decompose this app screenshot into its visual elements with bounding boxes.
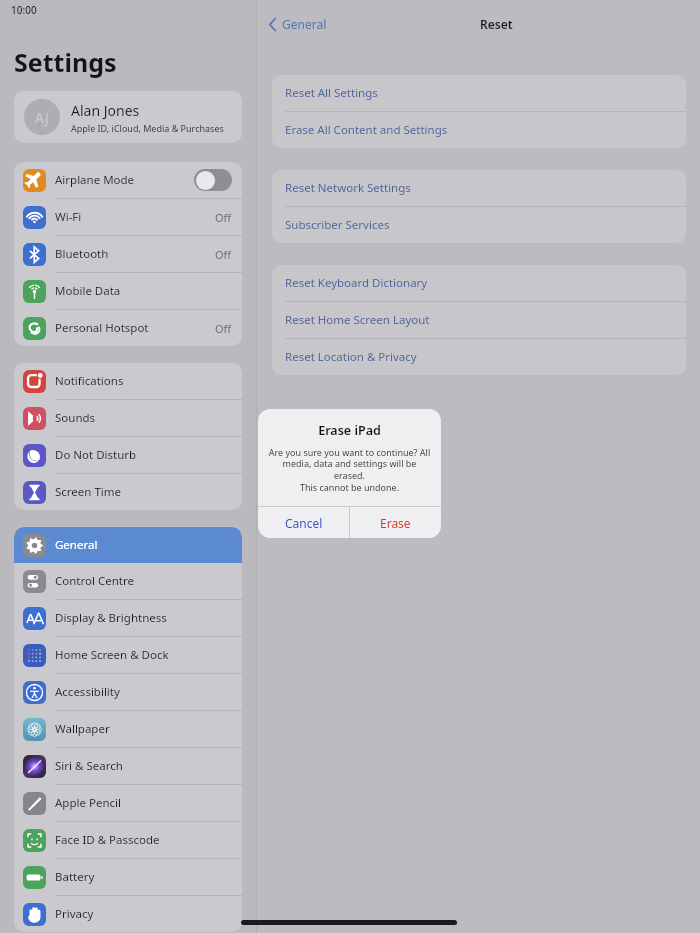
staticText: Subscriber Services: [285, 217, 390, 233]
staticText: AJ: [35, 108, 49, 127]
staticText: Bluetooth: [55, 246, 109, 262]
staticText: Display & Brightness: [55, 610, 167, 626]
staticText: Alan Jones: [71, 101, 140, 120]
button[interactable]: Siri & Search: [14, 748, 242, 784]
button[interactable]: Wallpaper: [14, 711, 242, 747]
button[interactable]: Sounds: [14, 400, 242, 436]
button[interactable]: Do Not Disturb: [14, 437, 242, 473]
staticText: Cancel: [285, 515, 323, 531]
staticText: Reset Location & Privacy: [285, 349, 417, 365]
staticText: Accessibility: [55, 684, 120, 700]
staticText: Home Screen & Dock: [55, 647, 169, 663]
button[interactable]: Erase All Content and Settings: [272, 112, 686, 148]
staticText: Privacy: [55, 906, 94, 922]
button[interactable]: Home Screen & Dock: [14, 637, 242, 673]
staticText: General: [55, 537, 98, 553]
staticText: Notifications: [55, 373, 124, 389]
button[interactable]: [194, 169, 232, 191]
staticText: Reset Keyboard Dictionary: [285, 275, 428, 291]
staticText: Apple Pencil: [55, 795, 121, 811]
button[interactable]: Erase: [350, 507, 441, 538]
staticText: Sounds: [55, 410, 96, 426]
button[interactable]: Bluetooth: [14, 236, 242, 272]
button[interactable]: Battery: [14, 859, 242, 895]
button[interactable]: Accessibility: [14, 674, 242, 710]
button[interactable]: AJ: [14, 91, 242, 143]
staticText: Face ID & Passcode: [55, 832, 160, 848]
staticText: Reset: [480, 16, 513, 32]
staticText: Siri & Search: [55, 758, 123, 774]
staticText: Erase All Content and Settings: [285, 122, 448, 138]
button[interactable]: Wi-Fi: [14, 199, 242, 235]
staticText: Control Centre: [55, 573, 134, 589]
button[interactable]: Control Centre: [14, 563, 242, 599]
staticText: Reset Network Settings: [285, 180, 411, 196]
button[interactable]: Personal Hotspot: [14, 310, 242, 346]
staticText: Do Not Disturb: [55, 447, 137, 463]
button[interactable]: Mobile Data: [14, 273, 242, 309]
button[interactable]: Reset Location & Privacy: [272, 339, 686, 375]
staticText: Battery: [55, 869, 95, 885]
staticText: Mobile Data: [55, 283, 121, 299]
button[interactable]: Screen Time: [14, 474, 242, 510]
button[interactable]: Display & Brightness: [14, 600, 242, 636]
staticText: General: [282, 16, 327, 32]
staticText: Reset All Settings: [285, 85, 378, 101]
button[interactable]: Subscriber Services: [272, 207, 686, 243]
button[interactable]: Airplane Mode: [14, 162, 242, 198]
staticText: Off: [215, 321, 232, 336]
staticText: Wallpaper: [55, 721, 110, 737]
staticText: Settings: [14, 45, 117, 79]
button[interactable]: Cancel: [258, 507, 349, 538]
button[interactable]: Face ID & Passcode: [14, 822, 242, 858]
staticText: Off: [215, 247, 232, 262]
button[interactable]: Notifications: [14, 363, 242, 399]
staticText: Reset Home Screen Layout: [285, 312, 430, 328]
staticText: Wi-Fi: [55, 209, 82, 225]
button[interactable]: Reset All Settings: [272, 75, 686, 111]
staticText: Apple ID, iCloud, Media & Purchases: [71, 122, 224, 134]
button[interactable]: Privacy: [14, 896, 242, 932]
staticText: Erase iPad: [258, 422, 441, 439]
staticText: Off: [215, 210, 232, 225]
staticText: Screen Time: [55, 484, 122, 500]
staticText: Erase: [380, 515, 411, 531]
button[interactable]: General: [265, 12, 331, 36]
button[interactable]: Reset Home Screen Layout: [272, 302, 686, 338]
staticText: Personal Hotspot: [55, 320, 149, 336]
staticText: Are you sure you want to continue? All m…: [267, 446, 432, 494]
button[interactable]: General: [14, 527, 242, 563]
staticText: Airplane Mode: [55, 172, 135, 188]
staticText: 10:00: [11, 3, 37, 17]
button[interactable]: Apple Pencil: [14, 785, 242, 821]
button[interactable]: Reset Network Settings: [272, 170, 686, 206]
button[interactable]: Reset Keyboard Dictionary: [272, 265, 686, 301]
